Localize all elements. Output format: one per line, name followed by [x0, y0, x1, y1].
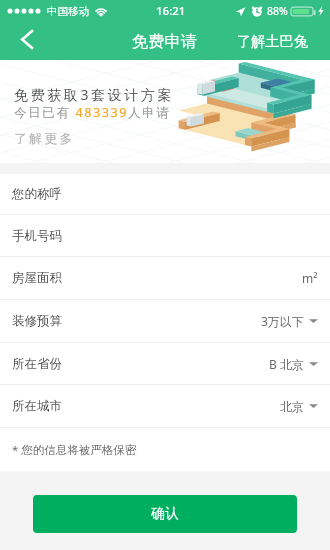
staticText: 免费申请: [132, 31, 198, 52]
button[interactable]: 所在城市: [0, 385, 330, 427]
staticText: 所在城市: [12, 398, 62, 414]
button[interactable]: 确认: [33, 495, 297, 533]
button[interactable]: 所在省份: [0, 343, 330, 384]
staticText: 了解土巴兔: [237, 32, 308, 50]
staticText: 今日已有 483339人申请: [14, 104, 171, 121]
button[interactable]: 房屋面积: [0, 257, 330, 299]
staticText: B 北京: [269, 356, 304, 372]
staticText: 北京: [280, 399, 304, 414]
staticText: 免费获取3套设计方案: [14, 85, 175, 104]
staticText: 中国移动: [47, 5, 89, 18]
staticText: 了解更多: [14, 131, 75, 147]
staticText: 房屋面积: [12, 270, 62, 286]
button[interactable]: 了解土巴兔: [237, 32, 308, 50]
button[interactable]: 手机号码: [0, 215, 330, 256]
staticText: 您的称呼: [12, 186, 62, 202]
staticText: 确认: [151, 505, 179, 523]
staticText: m²: [302, 270, 318, 286]
staticText: 16:21: [156, 3, 186, 19]
button[interactable]: 装修预算: [0, 300, 330, 342]
staticText: * 您的信息将被严格保密: [12, 442, 137, 458]
staticText: 88%: [267, 4, 288, 18]
button[interactable]: Back: [0, 22, 52, 60]
staticText: 所在省份: [12, 356, 62, 372]
staticText: 手机号码: [12, 228, 62, 244]
button[interactable]: 了解更多: [14, 131, 75, 147]
staticText: 装修预算: [12, 313, 62, 329]
staticText: 3万以下: [261, 313, 304, 329]
button[interactable]: 您的称呼: [0, 174, 330, 214]
